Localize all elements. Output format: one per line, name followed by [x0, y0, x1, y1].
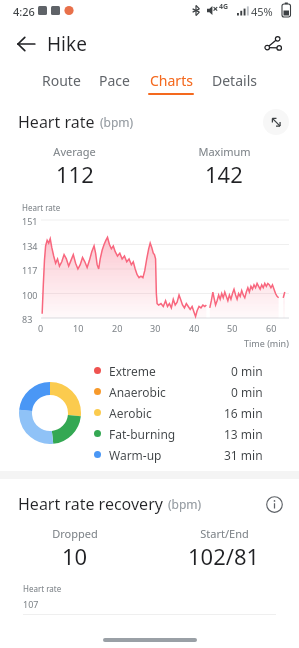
staticText: 20 — [112, 322, 123, 334]
staticText: 100 — [22, 289, 38, 301]
staticText: Anaerobic — [109, 384, 231, 400]
staticText: Route — [42, 71, 81, 90]
button[interactable]: Fat-burning — [94, 423, 285, 444]
staticText: 45% — [251, 4, 273, 19]
staticText: Average — [53, 144, 96, 159]
staticText: Dropped — [52, 526, 98, 541]
staticText: 10 — [62, 541, 88, 571]
button[interactable]: Anaerobic — [94, 381, 285, 402]
staticText: 30 — [150, 322, 161, 334]
staticText: 151 — [22, 215, 38, 227]
staticText: 142 — [205, 159, 243, 189]
staticText: 60 — [266, 322, 277, 334]
other: Heart rate chart — [0, 202, 299, 350]
button[interactable]: Warm-up — [94, 444, 285, 465]
staticText: 102/81 — [188, 541, 260, 571]
staticText: Fat-burning — [109, 426, 224, 442]
staticText: 112 — [56, 159, 94, 189]
button[interactable]: Charts — [148, 66, 194, 100]
staticText: Warm-up — [109, 447, 224, 463]
staticText: Start/End — [200, 526, 249, 541]
staticText: 0 min — [231, 384, 263, 400]
staticText: 0 min — [231, 363, 263, 379]
staticText: 83 — [22, 313, 33, 325]
staticText: 4:26 — [13, 4, 35, 19]
staticText: Aerobic — [109, 405, 224, 421]
button[interactable]: Pace — [99, 66, 130, 100]
staticText: (bpm) — [100, 114, 134, 130]
staticText: 40 — [189, 322, 200, 334]
button[interactable]: Route — [42, 66, 81, 100]
staticText: Heart rate — [23, 583, 62, 594]
button[interactable]: Extreme — [94, 360, 285, 381]
staticText: 31 min — [224, 447, 263, 463]
staticText: Time (min) — [244, 337, 289, 349]
button[interactable]: Details — [212, 66, 257, 100]
staticText: Hike — [47, 31, 87, 57]
button[interactable]: Info — [261, 491, 287, 517]
button[interactable]: Share — [255, 26, 291, 62]
staticText: 107 — [23, 598, 39, 610]
staticText: Heart rate recovery — [18, 493, 163, 515]
staticText: 13 min — [224, 426, 263, 442]
staticText: 4G — [219, 2, 229, 12]
staticText: 134 — [22, 240, 38, 252]
button[interactable]: Back — [8, 26, 44, 62]
staticText: 16 min — [224, 405, 263, 421]
staticText: Extreme — [109, 363, 231, 379]
staticText: Heart rate — [22, 202, 61, 213]
staticText: Heart rate — [18, 111, 95, 133]
staticText: (bpm) — [168, 496, 202, 512]
staticText: 0 — [38, 322, 44, 334]
staticText: 50 — [227, 322, 238, 334]
staticText: Charts — [150, 71, 193, 90]
staticText: Maximum — [198, 144, 251, 159]
staticText: Details — [212, 71, 257, 90]
button[interactable]: Aerobic — [94, 402, 285, 423]
button[interactable]: Expand chart — [263, 109, 289, 135]
staticText: Pace — [99, 71, 130, 90]
staticText: 117 — [22, 264, 38, 276]
staticText: 10 — [73, 322, 84, 334]
